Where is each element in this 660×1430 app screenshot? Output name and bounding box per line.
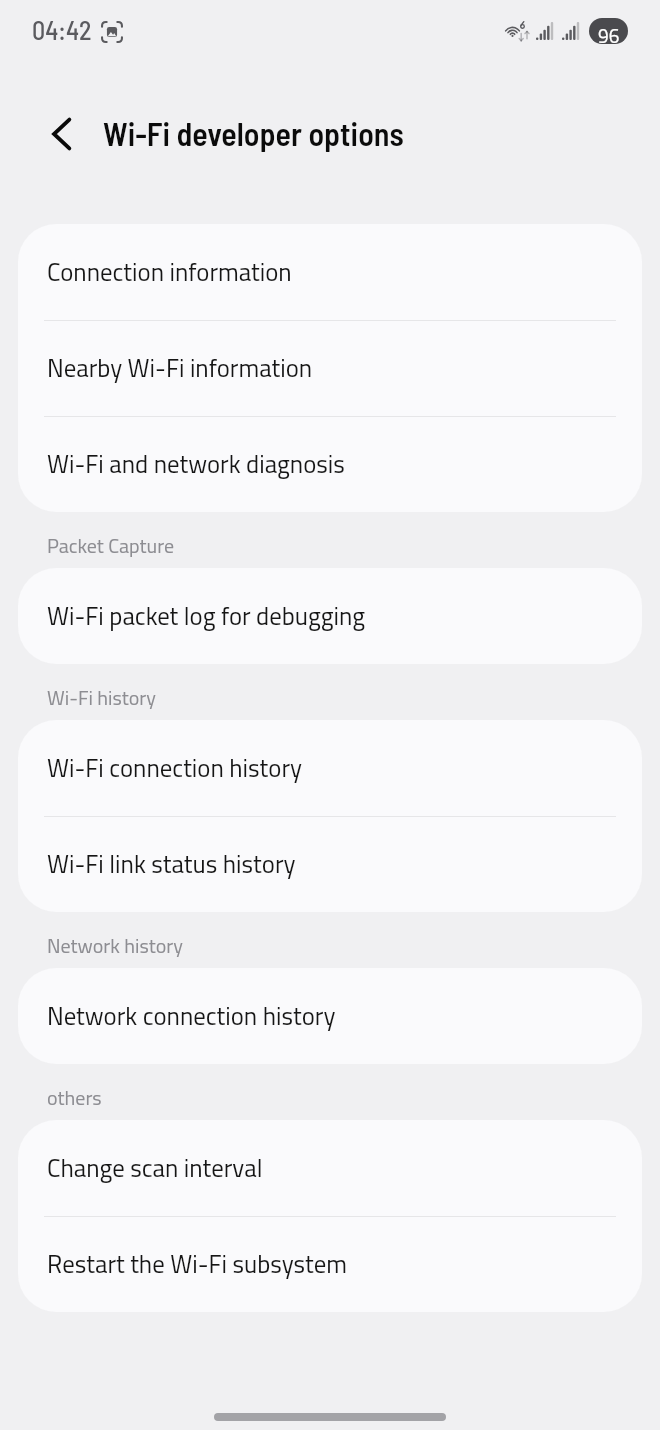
staticText: Connection information [47,249,292,295]
staticText: Packet Capture [47,527,175,564]
button[interactable]: Change scan interval [18,1120,642,1216]
staticText: Nearby Wi-Fi information [47,345,313,391]
staticText: Network history [47,927,183,964]
staticText: others [47,1079,102,1116]
staticText: Network connection history [47,993,336,1039]
button[interactable]: Navigate up [38,118,70,150]
staticText: 96 [598,18,620,44]
button[interactable]: Wi-Fi packet log for debugging [18,568,642,664]
button[interactable]: Network connection history [18,968,642,1064]
button[interactable]: Wi-Fi link status history [18,816,642,912]
button[interactable]: Wi-Fi connection history [18,720,642,816]
staticText: Change scan interval [47,1145,263,1191]
staticText: Wi-Fi and network diagnosis [47,441,345,487]
staticText: 04:42 [32,14,92,45]
staticText: Wi-Fi connection history [47,745,303,791]
staticText: Wi-Fi developer options [103,114,404,152]
staticText: Wi-Fi packet log for debugging [47,593,366,639]
staticText: Wi-Fi history [47,679,156,716]
button[interactable]: Nearby Wi-Fi information [18,320,642,416]
button[interactable]: Wi-Fi and network diagnosis [18,416,642,512]
staticText: Restart the Wi-Fi subsystem [47,1241,348,1287]
button[interactable]: Restart the Wi-Fi subsystem [18,1216,642,1312]
button[interactable]: Connection information [18,224,642,320]
staticText: Wi-Fi link status history [47,841,296,887]
